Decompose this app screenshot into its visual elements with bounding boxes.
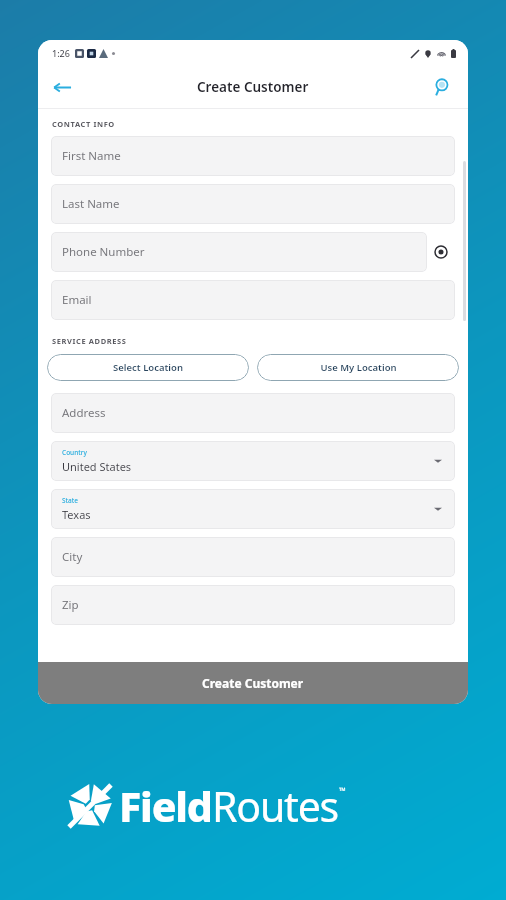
staticText: CONTACT INFO	[52, 119, 115, 129]
button[interactable]: Last Name	[51, 184, 455, 224]
button[interactable]: Zip	[51, 585, 455, 625]
staticText: City	[62, 549, 83, 565]
staticText: Phone Number	[62, 244, 145, 260]
staticText: State	[62, 496, 79, 505]
button[interactable]: Create Customer	[38, 662, 468, 704]
staticText: Texas	[62, 507, 91, 522]
button[interactable]: First Name	[51, 136, 455, 176]
staticText: Use My Location	[320, 361, 397, 374]
staticText: Select Location	[113, 361, 183, 374]
staticText: Country	[62, 448, 87, 457]
button[interactable]: Phone Number	[51, 232, 427, 272]
staticText: Field	[119, 778, 212, 834]
staticText: SERVICE ADDRESS	[52, 336, 127, 346]
staticText: United States	[62, 459, 132, 474]
button[interactable]: Search	[426, 70, 460, 104]
staticText: Address	[62, 405, 106, 421]
button[interactable]: Country	[51, 441, 455, 481]
button[interactable]: City	[51, 537, 455, 577]
staticText: Email	[62, 292, 92, 308]
button[interactable]: Select Location	[47, 354, 249, 381]
staticText: Routes	[212, 778, 339, 834]
staticText: ™	[339, 784, 346, 796]
button[interactable]: Address	[51, 393, 455, 433]
staticText: Zip	[62, 597, 79, 613]
button[interactable]: Add phone number	[427, 232, 455, 272]
button[interactable]: State	[51, 489, 455, 529]
staticText: 1:26	[52, 47, 70, 59]
button[interactable]: Back	[44, 69, 80, 105]
button[interactable]: Email	[51, 280, 455, 320]
staticText: Create Customer	[202, 675, 304, 691]
button[interactable]: Use My Location	[257, 354, 459, 381]
staticText: First Name	[62, 148, 121, 164]
staticText: Last Name	[62, 196, 120, 212]
staticText: Create Customer	[197, 78, 309, 96]
